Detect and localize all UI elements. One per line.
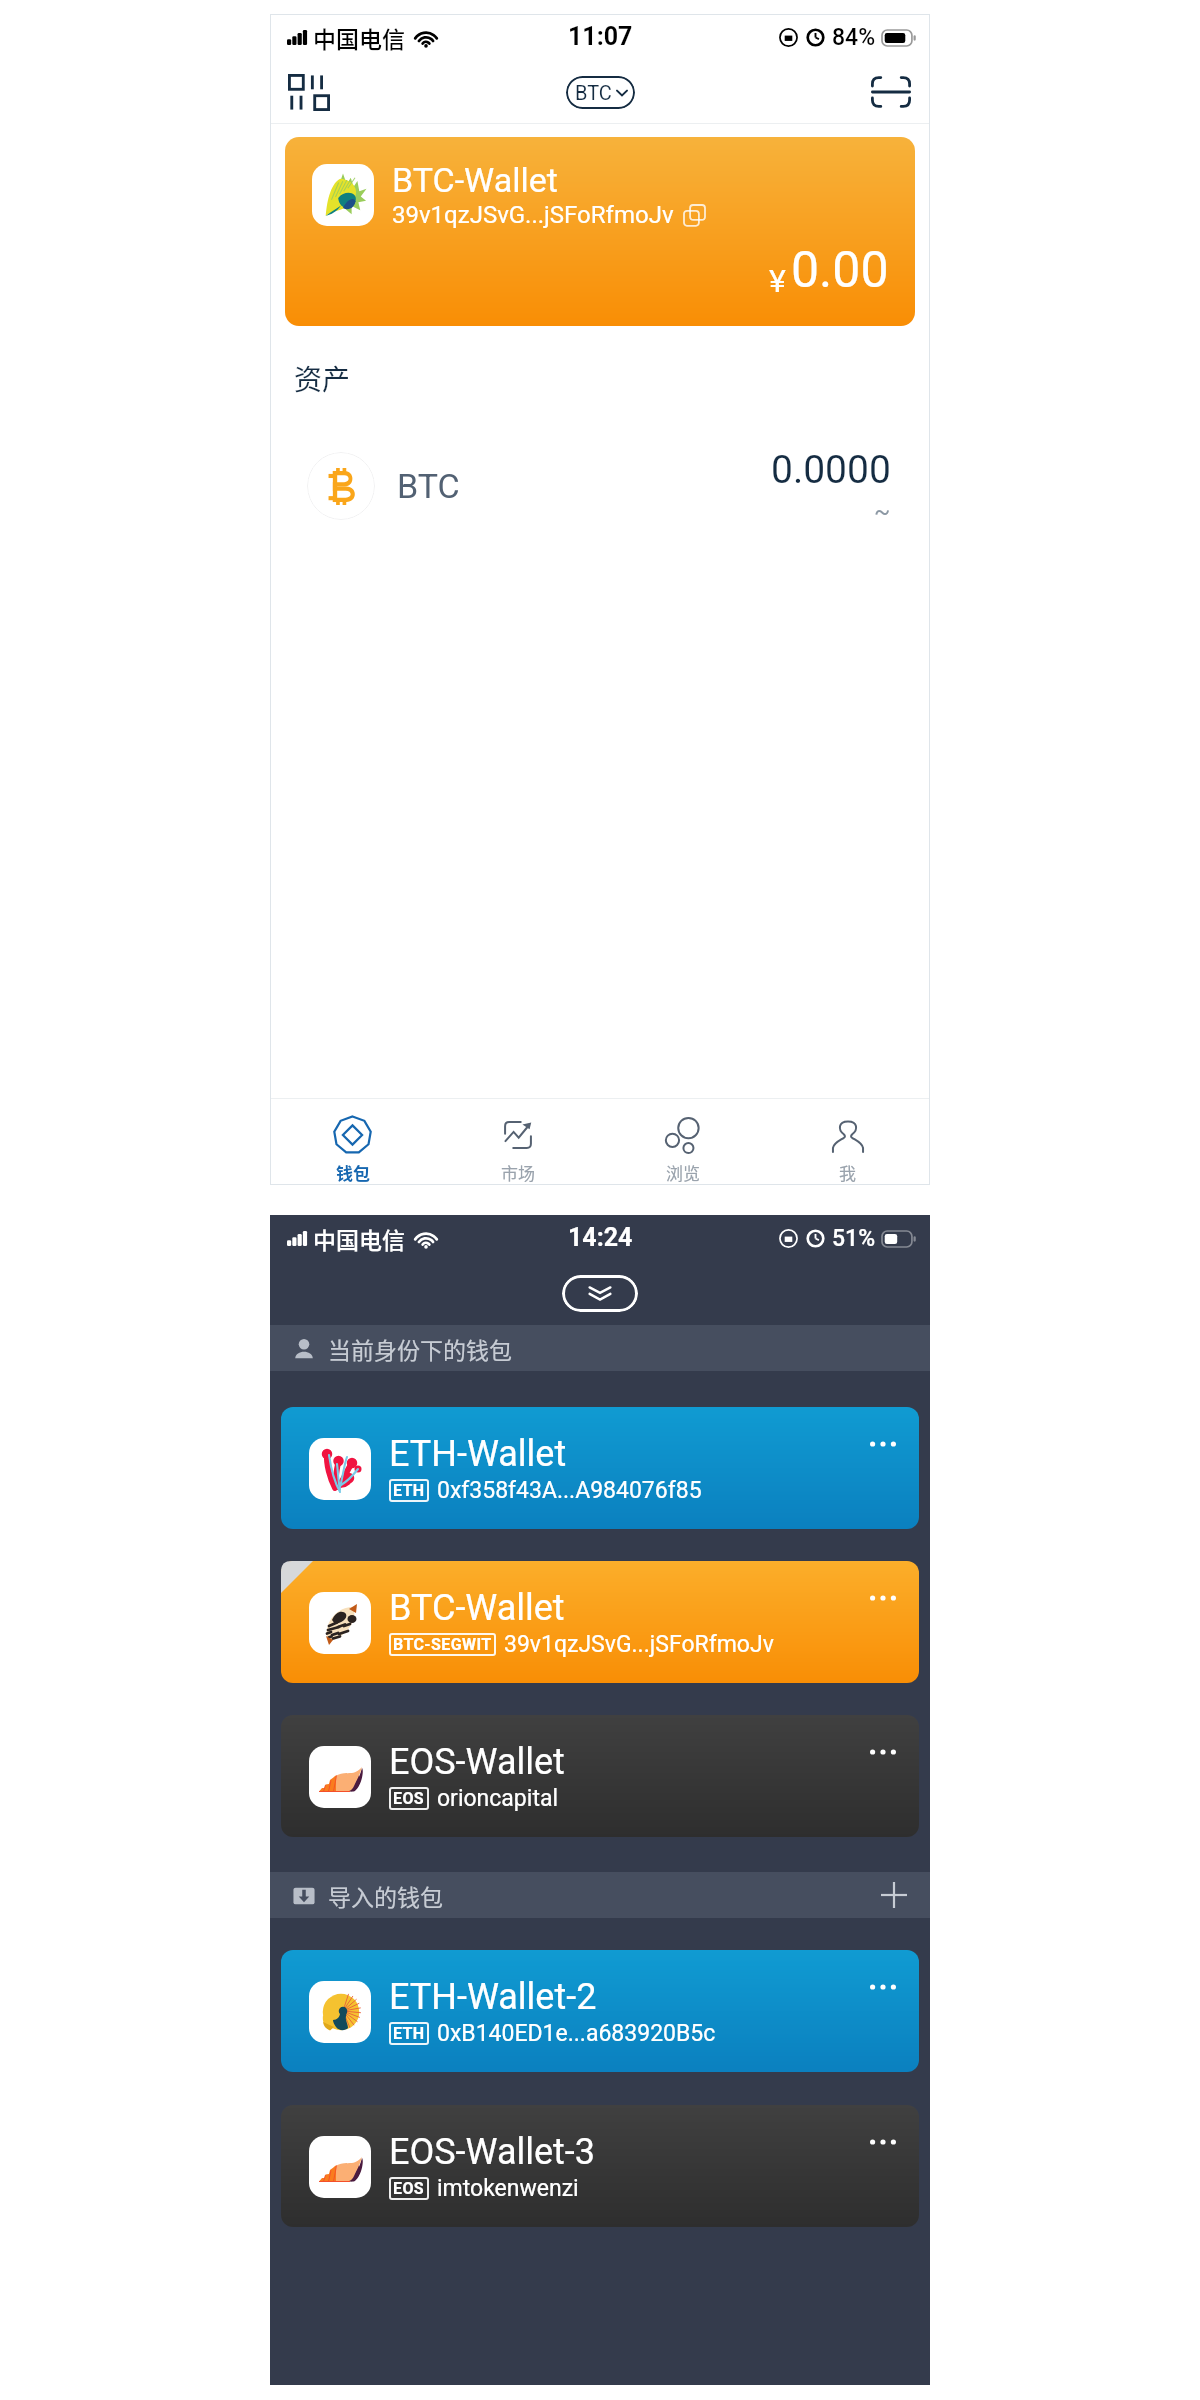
button[interactable]: More options: [860, 1575, 906, 1621]
button[interactable]: More options: [860, 2119, 906, 2165]
staticText: EOS-Wallet-3: [389, 2131, 596, 2173]
button[interactable]: 钱包: [270, 1099, 435, 1185]
button[interactable]: QR code: [280, 63, 338, 121]
staticText: 39v1qzJSvG...jSFoRfmoJv: [504, 1631, 774, 1658]
button[interactable]: More options: [860, 1964, 906, 2010]
staticText: 资产: [294, 358, 351, 399]
staticText: 11:07: [568, 22, 633, 51]
staticText: 84%: [832, 24, 876, 51]
staticText: BTC-Wallet: [389, 1587, 565, 1629]
button[interactable]: Collapse: [562, 1275, 638, 1312]
staticText: 39v1qzJSvG...jSFoRfmoJv: [392, 201, 674, 229]
staticText: ETH: [393, 1481, 425, 1500]
button[interactable]: BTC: [566, 76, 635, 109]
staticText: 当前身份下的钱包: [328, 1332, 512, 1365]
button[interactable]: BTC-Wallet: [281, 1561, 919, 1683]
button[interactable]: More options: [860, 1421, 906, 1467]
staticText: orioncapital: [437, 1785, 559, 1812]
staticText: 导入的钱包: [328, 1879, 443, 1912]
staticText: 0xf358f43A...A984076f85: [437, 1477, 702, 1504]
staticText: 浏览: [666, 1160, 700, 1185]
button[interactable]: EOS-Wallet-3: [281, 2105, 919, 2227]
staticText: 0xB140ED1e...a683920B5c: [437, 2020, 716, 2047]
staticText: 14:24: [568, 1223, 633, 1252]
staticText: BTC: [575, 81, 612, 104]
staticText: EOS-Wallet: [389, 1741, 565, 1783]
button[interactable]: ETH-Wallet: [281, 1407, 919, 1529]
staticText: BTC: [397, 466, 460, 506]
staticText: 51%: [832, 1225, 876, 1252]
button[interactable]: BTC: [270, 446, 930, 526]
staticText: BTC-SEGWIT: [393, 1635, 492, 1654]
staticText: ETH: [393, 2024, 425, 2043]
staticText: EOS: [393, 2179, 425, 2198]
button[interactable]: 市场: [435, 1099, 600, 1185]
staticText: 中国电信: [313, 1222, 405, 1255]
button[interactable]: 我: [765, 1099, 930, 1185]
staticText: 我: [839, 1160, 856, 1185]
staticText: ~: [874, 498, 891, 526]
staticText: ETH-Wallet: [389, 1433, 567, 1475]
staticText: 中国电信: [313, 21, 405, 54]
button[interactable]: Scan: [862, 63, 920, 121]
button[interactable]: EOS-Wallet: [281, 1715, 919, 1837]
staticText: imtokenwenzi: [437, 2175, 579, 2202]
staticText: 钱包: [336, 1160, 370, 1185]
staticText: BTC-Wallet: [392, 160, 558, 200]
staticText: 0.00: [791, 241, 889, 300]
staticText: 市场: [501, 1160, 535, 1185]
button[interactable]: Add wallet: [872, 1873, 916, 1917]
button[interactable]: ETH-Wallet-2: [281, 1950, 919, 2072]
button[interactable]: BTC-Wallet: [285, 137, 915, 326]
staticText: ¥: [769, 262, 786, 300]
staticText: 0.0000: [771, 447, 891, 493]
staticText: ETH-Wallet-2: [389, 1976, 597, 2018]
button[interactable]: 浏览: [600, 1099, 765, 1185]
staticText: EOS: [393, 1789, 425, 1808]
button[interactable]: More options: [860, 1729, 906, 1775]
